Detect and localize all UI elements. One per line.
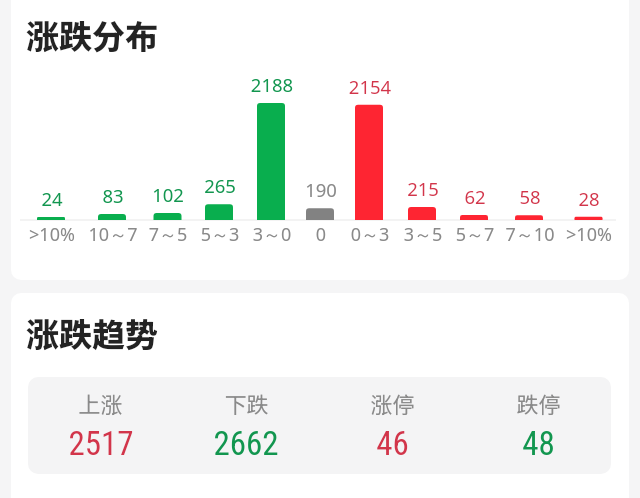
button[interactable]: 下跌 [173, 377, 319, 474]
staticText: 215 [383, 176, 463, 201]
staticText: >10% [549, 222, 629, 247]
staticText: 62 [435, 184, 515, 209]
staticText: 83 [73, 183, 153, 208]
button[interactable] [11, 0, 629, 280]
staticText: 涨跌分布 [26, 11, 158, 59]
staticText: 7～5 [128, 222, 208, 247]
staticText: 7～10 [490, 222, 570, 247]
staticText: 102 [128, 182, 208, 207]
staticText: 46 [376, 424, 409, 463]
staticText: >10% [12, 222, 92, 247]
staticText: 2662 [213, 424, 279, 463]
staticText: 跌停 [516, 387, 561, 419]
button[interactable] [11, 293, 629, 498]
staticText: 2154 [330, 74, 410, 99]
other: Rise and fall distribution bar chart [0, 0, 640, 498]
staticText: 涨停 [370, 387, 415, 419]
staticText: 0～3 [330, 222, 410, 247]
staticText: 48 [522, 424, 555, 463]
staticText: 2517 [68, 424, 134, 463]
staticText: 58 [490, 184, 570, 209]
staticText: 265 [180, 173, 260, 198]
staticText: 3～0 [232, 222, 312, 247]
staticText: 190 [281, 177, 361, 202]
button[interactable]: 上涨 [28, 377, 173, 474]
staticText: 下跌 [224, 387, 269, 419]
staticText: 5～7 [435, 222, 515, 247]
staticText: 涨跌趋势 [26, 309, 158, 357]
button[interactable]: 跌停 [465, 377, 611, 474]
staticText: 28 [549, 186, 629, 211]
staticText: 3～5 [383, 222, 463, 247]
button[interactable]: 涨停 [319, 377, 465, 474]
staticText: 0 [281, 222, 361, 247]
staticText: 10～7 [73, 222, 153, 247]
staticText: 上涨 [78, 387, 123, 419]
staticText: 5～3 [180, 222, 260, 247]
staticText: 24 [12, 186, 92, 211]
staticText: 2188 [232, 72, 312, 97]
